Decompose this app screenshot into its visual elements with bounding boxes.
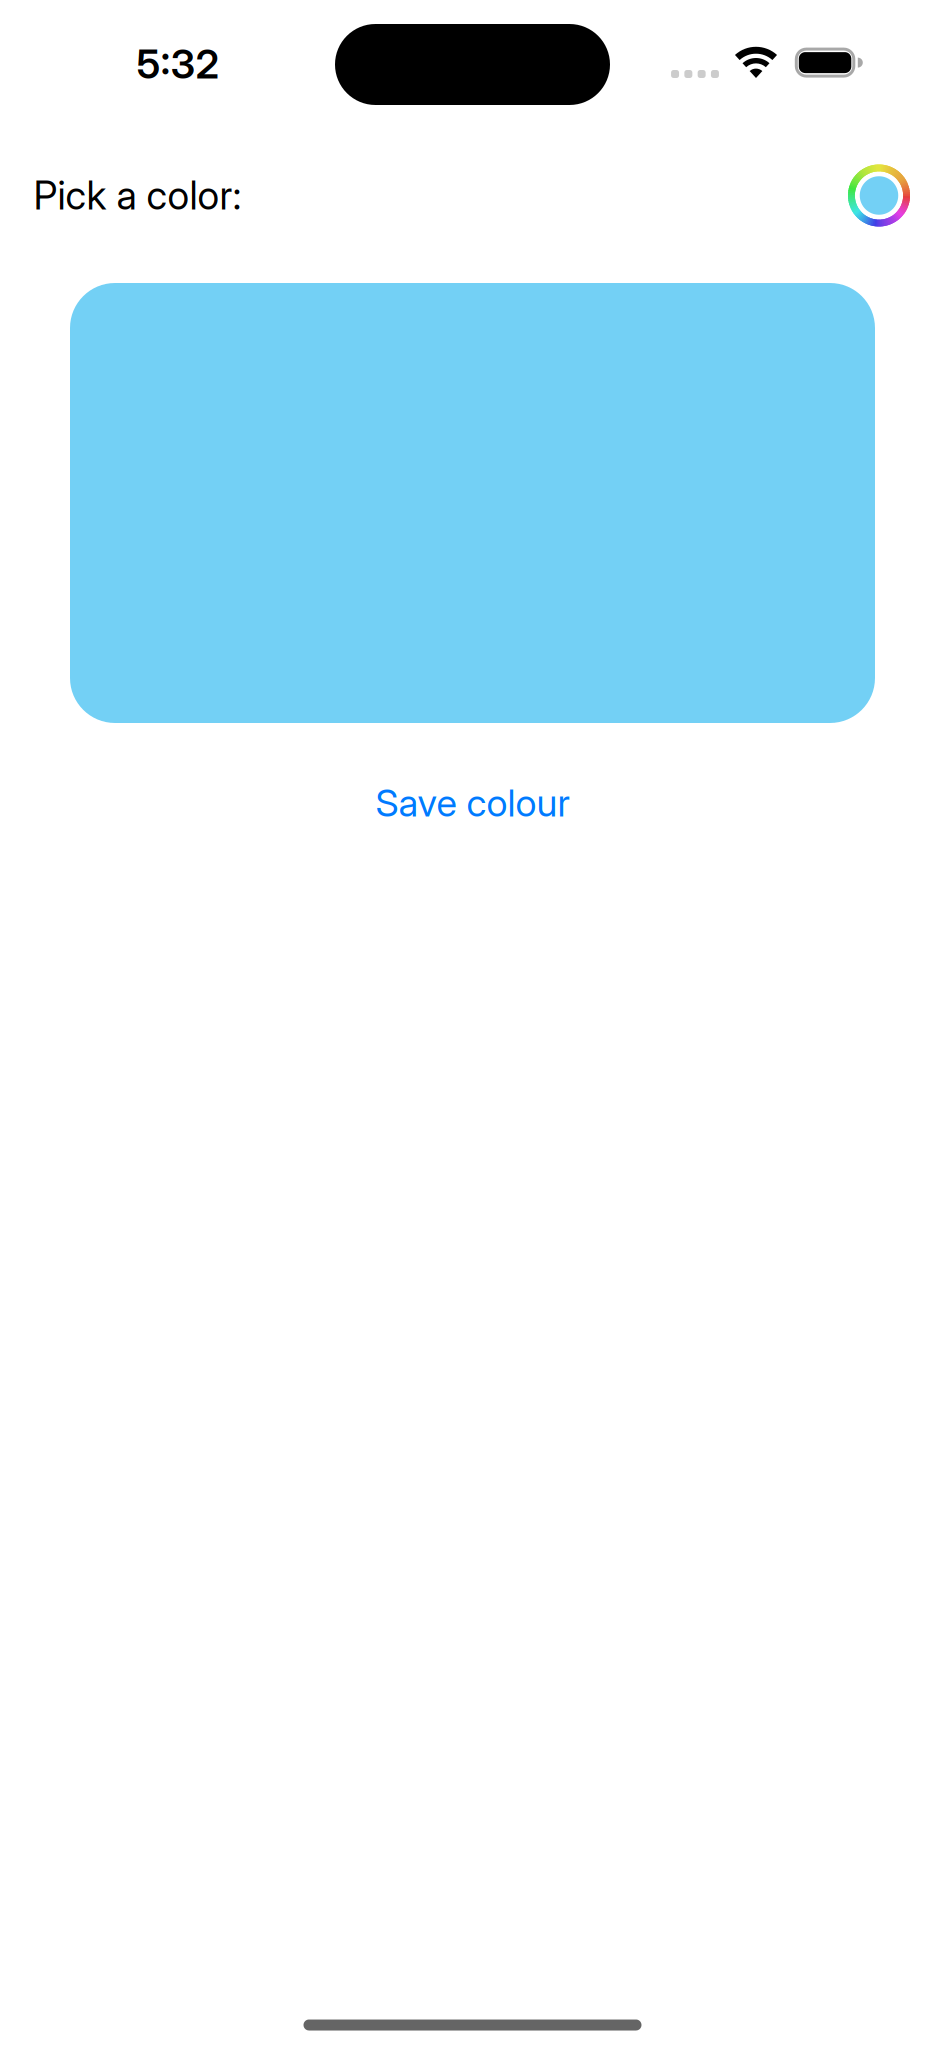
- staticText: 5:32: [136, 40, 219, 88]
- button[interactable]: Pick a color: [844, 160, 914, 230]
- button[interactable]: Save colour: [362, 771, 582, 835]
- staticText: Save colour: [375, 780, 569, 826]
- staticText: Pick a color:: [33, 172, 241, 219]
